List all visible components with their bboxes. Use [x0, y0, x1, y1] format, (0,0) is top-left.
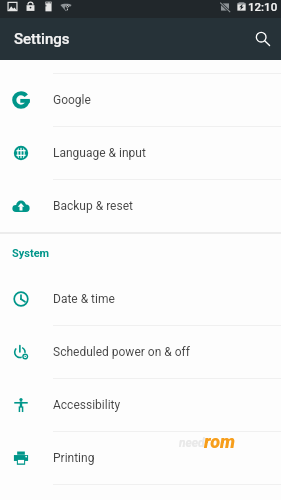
- button[interactable]: Search: [248, 24, 278, 54]
- staticText: Date & time: [53, 292, 115, 306]
- staticText: System: [12, 247, 50, 260]
- button[interactable]: Printing: [0, 432, 281, 485]
- staticText: Accessibility: [53, 398, 121, 412]
- staticText: Printing: [53, 451, 95, 465]
- staticText: Language & input: [53, 146, 146, 160]
- button[interactable]: Backup & reset: [0, 180, 281, 232]
- staticText: 12:10: [248, 0, 278, 13]
- button[interactable]: Accessibility: [0, 379, 281, 432]
- button[interactable]: Scheduled power on & off: [0, 326, 281, 379]
- button[interactable]: Google: [0, 74, 281, 127]
- staticText: Scheduled power on & off: [53, 345, 190, 359]
- button[interactable]: Date & time: [0, 273, 281, 326]
- staticText: Backup & reset: [53, 199, 133, 213]
- button[interactable]: Language & input: [0, 127, 281, 180]
- staticText: rom: [204, 431, 236, 452]
- staticText: Google: [53, 93, 91, 107]
- staticText: need: [179, 436, 205, 450]
- staticText: Settings: [14, 30, 70, 48]
